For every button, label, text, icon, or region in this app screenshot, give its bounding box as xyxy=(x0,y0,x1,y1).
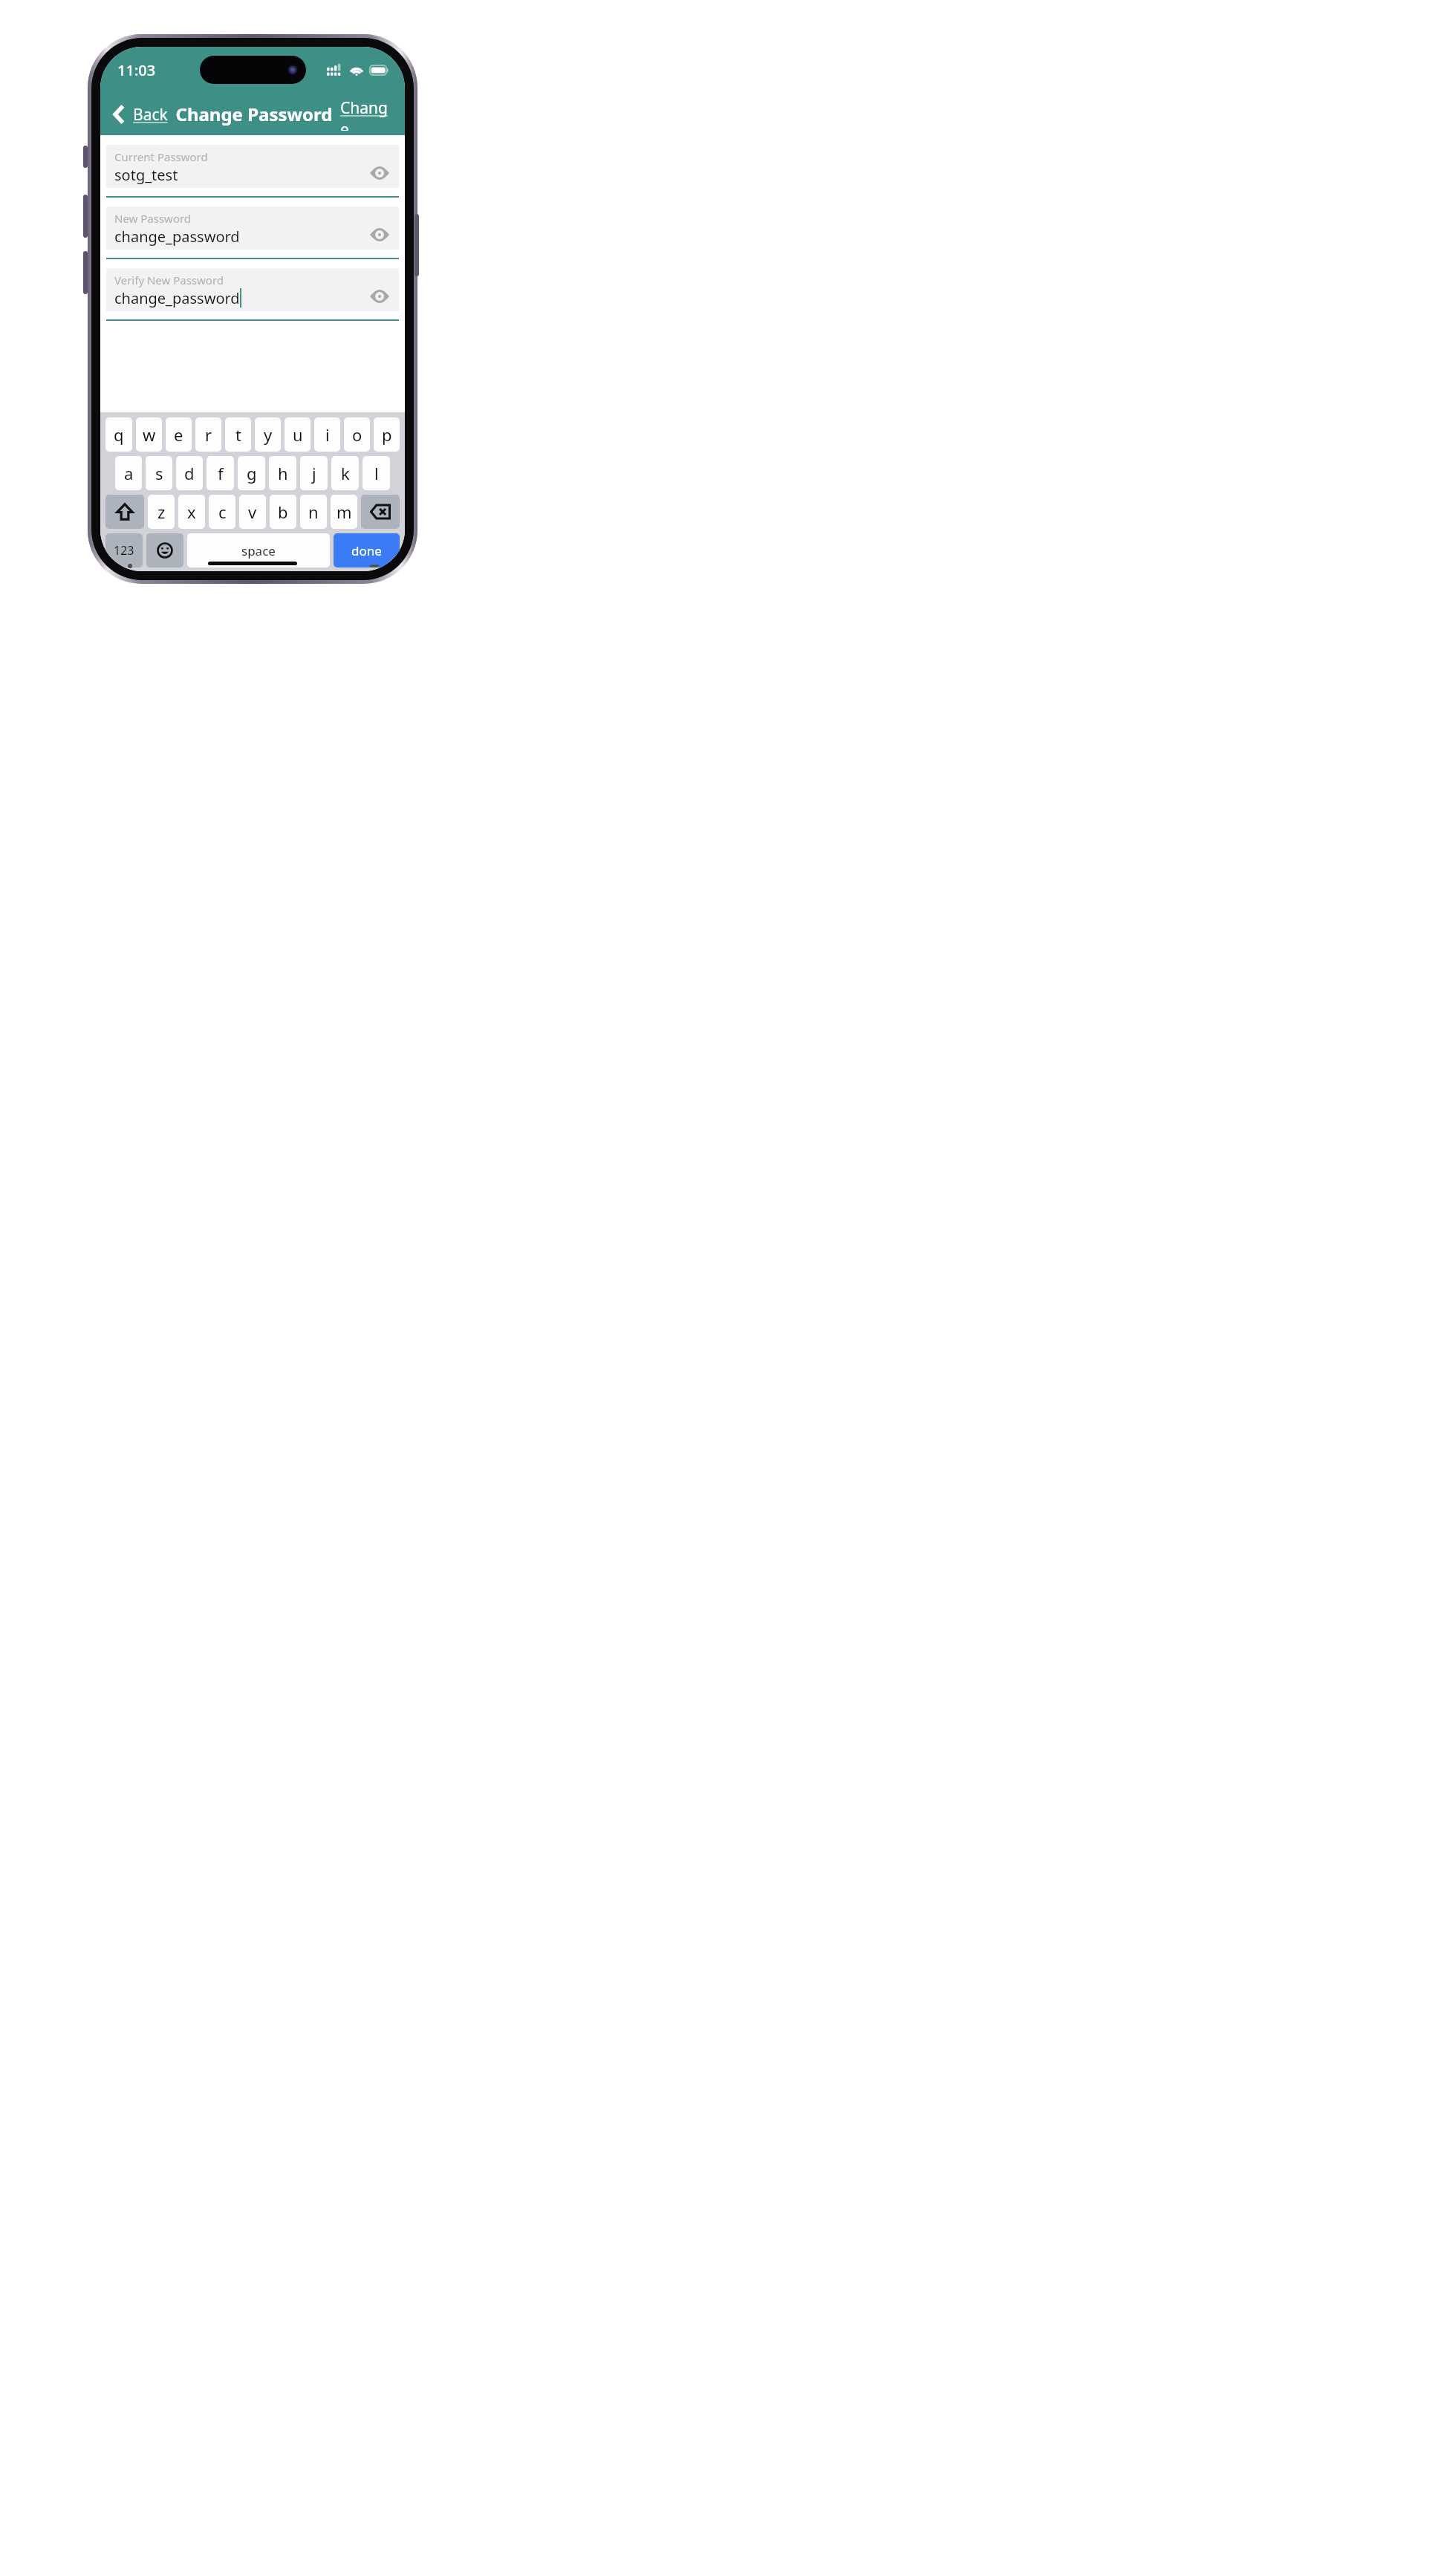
staticText: sotg_test xyxy=(114,165,178,185)
staticText: n xyxy=(308,501,319,523)
staticText: q xyxy=(114,423,124,446)
staticText: m xyxy=(337,501,352,523)
button[interactable]: Show password xyxy=(368,229,391,247)
button[interactable]: Shift xyxy=(105,495,144,529)
button[interactable]: p xyxy=(374,417,400,452)
button[interactable]: Show password xyxy=(368,290,391,308)
staticText: a xyxy=(124,462,134,484)
button[interactable]: Current Password xyxy=(100,145,405,198)
staticText: k xyxy=(341,462,350,484)
button[interactable]: i xyxy=(314,417,340,452)
button[interactable]: c xyxy=(209,495,235,529)
staticText: u xyxy=(293,423,303,446)
staticText: z xyxy=(157,501,166,523)
button[interactable]: Emoji xyxy=(146,533,183,567)
button[interactable]: b xyxy=(270,495,296,529)
staticText: i xyxy=(325,423,330,446)
button[interactable]: Back xyxy=(100,99,175,130)
staticText: Change xyxy=(340,97,393,131)
button[interactable]: f xyxy=(207,456,234,490)
staticText: j xyxy=(312,462,316,484)
staticText: v xyxy=(248,501,257,523)
button[interactable]: x xyxy=(178,495,205,529)
staticText: done xyxy=(351,542,382,559)
button[interactable]: Verify New Password xyxy=(100,268,405,321)
button[interactable]: 123 xyxy=(105,533,143,567)
button[interactable]: Voice input xyxy=(363,563,386,567)
button[interactable]: q xyxy=(105,417,132,452)
staticText: l xyxy=(374,462,379,484)
button[interactable]: r xyxy=(195,417,221,452)
button[interactable]: m xyxy=(331,495,357,529)
staticText: t xyxy=(235,423,241,446)
staticText: p xyxy=(382,423,392,446)
staticText: b xyxy=(278,501,288,523)
button[interactable]: j xyxy=(300,456,328,490)
staticText: d xyxy=(184,462,195,484)
button[interactable]: h xyxy=(269,456,296,490)
button[interactable]: done xyxy=(334,533,400,567)
button[interactable]: z xyxy=(148,495,175,529)
button[interactable]: Change xyxy=(333,93,405,135)
staticText: h xyxy=(278,462,288,484)
button[interactable]: t xyxy=(225,417,251,452)
button[interactable]: Change keyboard language xyxy=(117,563,143,567)
staticText: x xyxy=(187,501,196,523)
button[interactable]: e xyxy=(166,417,192,452)
staticText: o xyxy=(352,423,362,446)
staticText: 11:03 xyxy=(117,60,156,80)
staticText: Current Password xyxy=(114,149,208,164)
button[interactable]: d xyxy=(176,456,203,490)
button[interactable]: s xyxy=(146,456,172,490)
staticText: y xyxy=(264,423,273,446)
button[interactable]: n xyxy=(300,495,327,529)
staticText: w xyxy=(143,423,156,446)
button[interactable]: w xyxy=(136,417,162,452)
staticText: r xyxy=(205,423,212,446)
staticText: g xyxy=(247,462,257,484)
button[interactable]: Show password xyxy=(368,167,391,185)
staticText: c xyxy=(218,501,227,523)
staticText: Change Password xyxy=(175,102,333,126)
staticText: change_password xyxy=(114,227,240,247)
button[interactable]: v xyxy=(239,495,266,529)
button[interactable]: a xyxy=(115,456,142,490)
staticText: Verify New Password xyxy=(114,273,224,287)
staticText: New Password xyxy=(114,211,192,226)
button[interactable]: k xyxy=(331,456,359,490)
staticText: f xyxy=(218,462,224,484)
button[interactable]: y xyxy=(255,417,281,452)
staticText: e xyxy=(174,423,183,446)
button[interactable]: space xyxy=(187,533,330,567)
button[interactable]: Backspace xyxy=(361,495,400,529)
staticText: s xyxy=(155,462,163,484)
staticText: 123 xyxy=(114,542,134,559)
staticText: change_password xyxy=(114,288,240,308)
staticText: space xyxy=(241,542,276,559)
button[interactable]: o xyxy=(344,417,370,452)
button[interactable]: u xyxy=(285,417,311,452)
staticText: Back xyxy=(133,104,168,126)
button[interactable]: g xyxy=(238,456,265,490)
button[interactable]: New Password xyxy=(100,206,405,259)
button[interactable]: l xyxy=(362,456,390,490)
